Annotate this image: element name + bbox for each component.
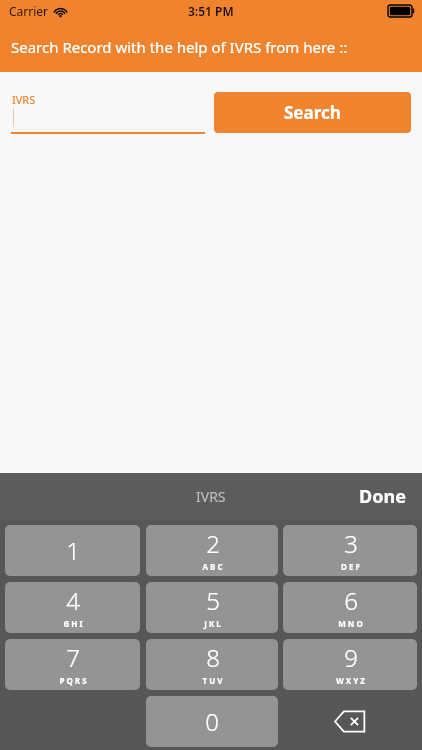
staticText: 8 <box>206 641 220 674</box>
button[interactable]: 9 <box>283 639 417 690</box>
staticText: J K L <box>204 618 221 629</box>
staticText: 2 <box>206 527 220 560</box>
staticText: P Q R S <box>59 675 87 686</box>
button[interactable]: Done <box>353 478 412 515</box>
staticText: 3 <box>344 527 358 560</box>
staticText: Search <box>284 101 341 124</box>
button[interactable]: IVRS <box>11 88 205 134</box>
staticText: 1 <box>66 534 80 567</box>
staticText: Done <box>359 484 406 509</box>
button[interactable]: Search <box>214 92 411 133</box>
staticText: A B C <box>202 561 223 572</box>
staticText: 0 <box>205 705 219 738</box>
staticText: 9 <box>344 641 358 674</box>
button[interactable]: 5 <box>146 582 278 633</box>
button[interactable]: 0 <box>146 696 278 747</box>
staticText: IVRS <box>12 92 36 107</box>
staticText: 3:51 PM <box>188 3 234 19</box>
button[interactable]: 8 <box>146 639 278 690</box>
staticText: G H I <box>63 618 83 629</box>
staticText: IVRS <box>196 487 226 506</box>
button[interactable]: 6 <box>283 582 417 633</box>
staticText: 7 <box>66 641 80 674</box>
staticText: D E F <box>341 561 360 572</box>
button[interactable]: 3 <box>283 525 417 576</box>
staticText: Search Record with the help of IVRS from… <box>11 37 348 57</box>
staticText: 4 <box>66 584 80 617</box>
staticText: Carrier <box>9 3 49 19</box>
button[interactable]: 4 <box>5 582 140 633</box>
staticText: W X Y Z <box>336 675 365 686</box>
button[interactable]: 1 <box>5 525 140 576</box>
staticText: 5 <box>206 584 220 617</box>
staticText: 6 <box>344 584 358 617</box>
button[interactable]: 2 <box>146 525 278 576</box>
button[interactable]: 7 <box>5 639 140 690</box>
staticText: T U V <box>202 675 223 686</box>
button[interactable]: Backspace <box>283 696 417 747</box>
staticText: M N O <box>338 618 363 629</box>
